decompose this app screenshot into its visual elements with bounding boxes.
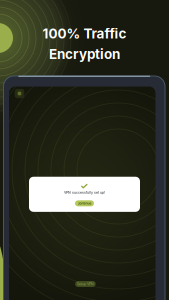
button[interactable]: Setup VPN [75, 281, 96, 287]
staticText: Continue [77, 201, 91, 205]
staticText: Encryption [49, 46, 120, 62]
staticText: Setup VPN [77, 282, 94, 286]
staticText: 100% Traffic [42, 26, 126, 42]
staticText: VPN successfully set up! [64, 190, 105, 195]
button[interactable]: Continue [75, 200, 94, 206]
button[interactable]: Account [15, 89, 24, 98]
